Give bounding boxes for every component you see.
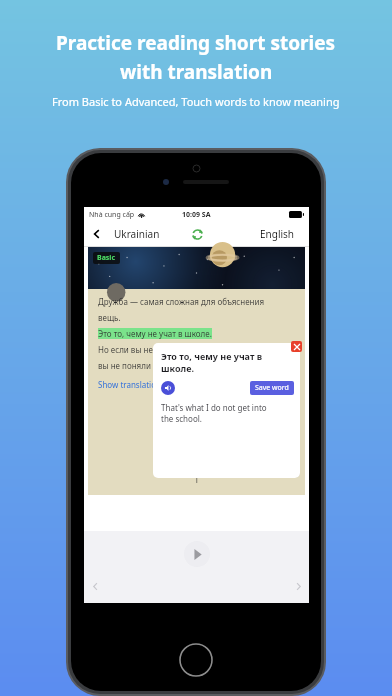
staticText: with translation — [120, 59, 273, 85]
button[interactable]: Show translation — [98, 379, 161, 390]
button[interactable]: Basic — [97, 253, 116, 263]
staticText: That's what I do not get into — [161, 402, 267, 413]
staticText: Но если вы не поняли, что такое дружба, — [98, 344, 258, 355]
staticText: English — [260, 227, 295, 241]
staticText: Дружба — самая сложная для объяснения — [98, 296, 265, 307]
staticText: вы не поняли ничего. — [98, 360, 183, 371]
button[interactable]: Это то, чему не учат в школе. — [98, 328, 212, 339]
button[interactable]: Ukrainian — [114, 227, 160, 241]
staticText: Это то, чему не учат в — [161, 350, 263, 362]
staticText: Basic — [97, 253, 116, 263]
staticText: Save word — [255, 383, 289, 393]
staticText: Show translation — [98, 379, 161, 390]
button[interactable]: Back — [87, 224, 107, 244]
button[interactable]: Previous page — [86, 577, 104, 595]
button[interactable]: Swap languages — [188, 225, 206, 243]
button[interactable]: Next page — [289, 577, 307, 595]
staticText: вещь. — [98, 312, 121, 323]
button[interactable]: Play — [184, 541, 210, 567]
staticText: Nhà cung cấp — [89, 210, 135, 220]
staticText: 1 — [194, 473, 200, 485]
staticText: 10:09 SA — [182, 210, 211, 220]
button[interactable]: Save word — [250, 381, 294, 395]
button[interactable]: Close — [291, 341, 302, 352]
button[interactable]: English — [260, 227, 295, 241]
staticText: школе. — [161, 362, 194, 374]
staticText: Ukrainian — [114, 227, 160, 241]
staticText: From Basic to Advanced, Touch words to k… — [52, 94, 340, 109]
staticText: Это то, чему не учат в школе. — [98, 328, 212, 339]
staticText: the school. — [161, 413, 202, 424]
other: Home — [179, 643, 213, 677]
button[interactable]: Play pronunciation — [161, 381, 175, 395]
staticText: Practice reading short stories — [56, 30, 336, 56]
